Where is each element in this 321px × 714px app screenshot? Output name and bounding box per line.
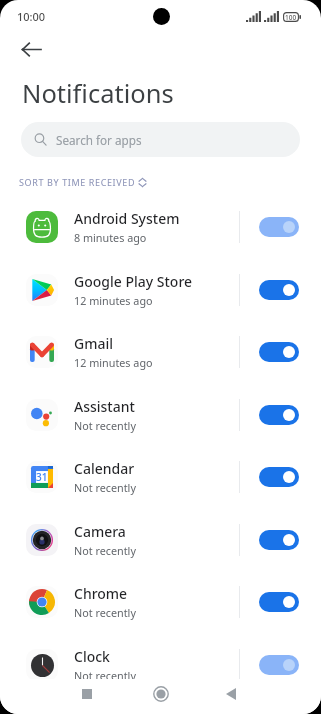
staticText: Android System (74, 209, 180, 228)
staticText: 100 (285, 13, 297, 22)
button[interactable]: Toggle notifications (259, 530, 299, 550)
button[interactable]: Toggle notifications (259, 592, 299, 612)
staticText: Calendar (74, 459, 135, 478)
staticText: SORT BY TIME RECEIVED (19, 176, 136, 188)
staticText: Not recently (74, 418, 136, 433)
staticText: 10:00 (17, 9, 46, 24)
staticText: 8 minutes ago (74, 230, 147, 245)
staticText: Not recently (74, 605, 136, 620)
staticText: Not recently (74, 543, 136, 558)
button[interactable]: Chrome (0, 570, 321, 633)
button[interactable]: Toggle notifications (259, 405, 299, 425)
button[interactable]: Back (14, 32, 48, 66)
button[interactable]: Home (141, 676, 181, 711)
staticText: Assistant (74, 397, 135, 416)
staticText: Gmail (74, 334, 114, 353)
staticText: Clock (74, 647, 110, 666)
staticText: Camera (74, 522, 126, 541)
button[interactable]: Gmail (0, 320, 321, 383)
button[interactable]: Recent apps (67, 676, 107, 711)
staticText: Google Play Store (74, 272, 193, 291)
button[interactable]: Back (211, 676, 251, 711)
staticText: 12 minutes ago (74, 293, 153, 308)
button[interactable]: Search for apps (21, 122, 300, 157)
button[interactable]: Google Play Store (0, 258, 321, 321)
button[interactable]: 31 (0, 445, 321, 508)
button[interactable]: Toggle notifications (259, 280, 299, 300)
staticText: Notifications (22, 76, 174, 111)
button[interactable]: Assistant (0, 383, 321, 446)
button[interactable]: Clock (0, 633, 321, 679)
staticText: 31 (36, 470, 48, 484)
button[interactable]: Toggle notifications (259, 342, 299, 362)
staticText: Not recently (74, 480, 136, 495)
button[interactable]: Android System (0, 195, 321, 258)
button[interactable]: Camera (0, 508, 321, 571)
button[interactable]: SORT BY TIME RECEIVED (19, 169, 321, 195)
button[interactable]: Toggle notifications (259, 655, 299, 675)
staticText: Search for apps (56, 132, 142, 148)
staticText: Not recently (74, 668, 136, 679)
button[interactable]: Toggle notifications (259, 217, 299, 237)
staticText: Chrome (74, 584, 128, 603)
button[interactable]: Toggle notifications (259, 467, 299, 487)
staticText: 12 minutes ago (74, 355, 153, 370)
